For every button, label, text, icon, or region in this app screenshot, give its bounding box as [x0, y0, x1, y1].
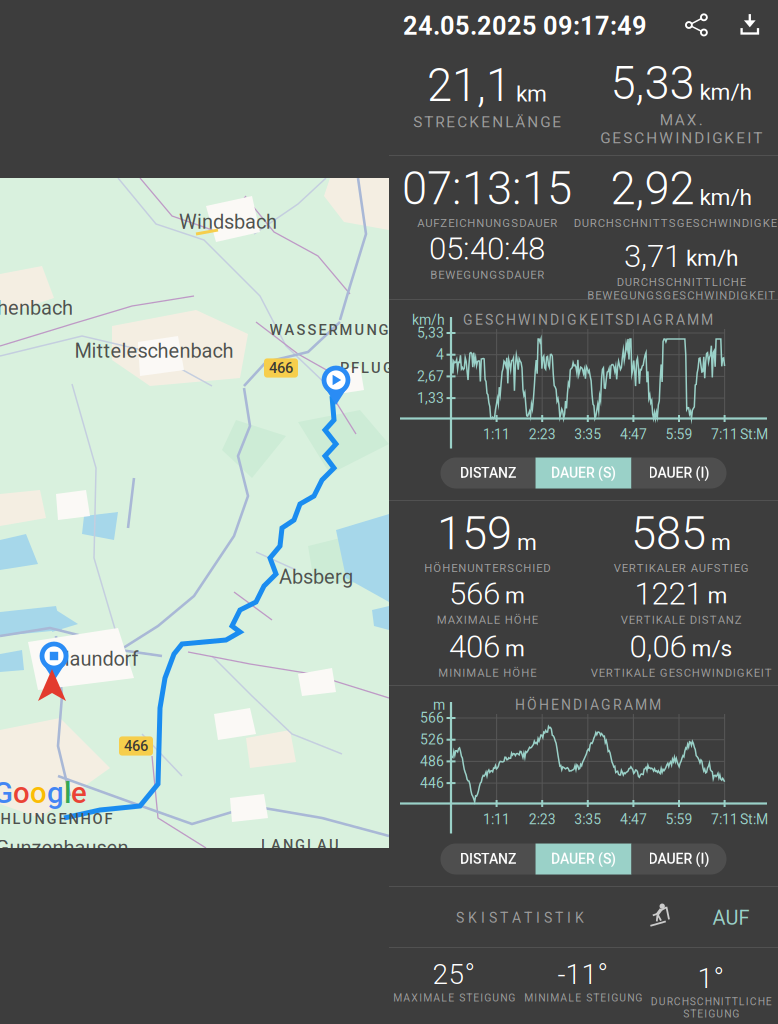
staticText: H Ö H E N U N T E R S C H I E D — [424, 561, 550, 575]
staticText: 1° — [697, 962, 724, 995]
staticText: 406 — [449, 628, 500, 665]
staticText: St:M — [740, 811, 768, 828]
staticText: 446 — [420, 775, 444, 791]
staticText: l — [64, 776, 71, 810]
staticText: 1:11 — [483, 811, 510, 828]
staticText: V E R T I K A L E D I S T A N Z — [620, 613, 741, 626]
button[interactable]: DISTANZ — [440, 457, 535, 488]
staticText: 07:13:15 — [402, 162, 572, 215]
staticText: 1,33 — [417, 390, 444, 406]
staticText: St:M — [740, 426, 768, 443]
staticText: 21,1 — [427, 59, 511, 112]
staticText: DISTANZ — [460, 465, 516, 481]
staticText: 566 — [449, 575, 500, 612]
staticText: G — [0, 776, 13, 810]
staticText: D U R C H S C H N I T T L I C H E S T E … — [650, 996, 771, 1020]
staticText: M A X . G E S C H W I N D I G K E I T — [600, 111, 762, 147]
staticText: 2,92 — [610, 162, 694, 215]
staticText: 2:23 — [529, 811, 556, 828]
staticText: m — [517, 529, 537, 555]
staticText: M A X I M A L E H Ö H E — [436, 613, 537, 626]
staticText: 05:40:48 — [429, 230, 545, 267]
staticText: D U R C H S C H N I T T L I C H E B E W … — [587, 276, 775, 302]
staticText: 4 — [436, 346, 444, 363]
staticText: M I N I M A L E H Ö H E — [438, 666, 536, 679]
staticText: 7:11 — [711, 426, 738, 443]
staticText: g — [47, 776, 64, 810]
staticText: 466 — [124, 737, 148, 755]
staticText: e — [71, 776, 87, 810]
staticText: Haundorf — [55, 647, 138, 671]
staticText: H Ö H E N D I A G R A M M — [515, 697, 661, 713]
staticText: Absberg — [279, 565, 353, 589]
staticText: km/h — [699, 184, 751, 210]
staticText: 7:11 — [711, 811, 738, 828]
staticText: Mitteleschenbach — [74, 339, 233, 363]
staticText: 25° — [432, 958, 475, 991]
button[interactable]: S K I S T A T I S T I K — [389, 887, 778, 947]
button[interactable]: DAUER (S) — [535, 843, 631, 874]
staticText: DAUER (S) — [551, 851, 616, 867]
staticText: 5:59 — [665, 811, 692, 828]
staticText: m — [433, 697, 445, 713]
staticText: 466 — [269, 359, 293, 377]
staticText: 2:23 — [529, 426, 556, 443]
staticText: AUF — [712, 906, 749, 930]
staticText: m — [711, 529, 731, 555]
staticText: P F L U G S — [340, 359, 404, 377]
staticText: -11° — [557, 958, 608, 991]
staticText: S K I S T A T I S T I K — [456, 910, 584, 926]
staticText: o — [13, 776, 30, 810]
staticText: 4:47 — [620, 811, 647, 828]
staticText: D U R C H S C H N I T T S G E S C H W I … — [573, 216, 778, 230]
staticText: 4:47 — [620, 426, 647, 443]
staticText: 566 — [420, 710, 444, 726]
staticText: chenbach — [0, 296, 73, 320]
button[interactable]: DAUER (S) — [535, 457, 631, 488]
staticText: 3:35 — [574, 426, 601, 443]
staticText: km/h — [699, 79, 751, 105]
staticText: km/h — [412, 312, 445, 328]
staticText: DISTANZ — [460, 851, 516, 867]
staticText: DAUER (I) — [648, 465, 709, 481]
staticText: km/h — [686, 245, 738, 271]
staticText: 0,06 — [629, 628, 686, 665]
staticText: A U F Z E I C H N U N G S D A U E R — [417, 216, 557, 230]
staticText: 526 — [420, 731, 444, 748]
staticText: W A S S E R M U N G E N — [269, 321, 410, 339]
staticText: L A N G L A U — [261, 836, 339, 854]
staticText: m/s — [691, 635, 732, 662]
staticText: km — [516, 81, 547, 107]
staticText: B E W E G U N G S D A U E R — [430, 268, 544, 281]
staticText: o — [30, 776, 47, 810]
button[interactable]: Download — [730, 3, 770, 46]
button[interactable]: DAUER (I) — [631, 457, 726, 488]
staticText: 24.05.2025 09:17:49 — [403, 11, 647, 41]
staticText: 5,33 — [610, 57, 694, 110]
staticText: 486 — [420, 753, 444, 770]
staticText: V E R T I K A L E G E S C H W I N D I G … — [590, 666, 771, 679]
staticText: G E S C H W I N D I G K E I T S D I A G … — [463, 312, 713, 328]
staticText: DAUER (I) — [648, 851, 709, 867]
staticText: m — [505, 582, 525, 609]
staticText: 5,33 — [417, 325, 444, 341]
staticText: M A X I M A L E S T E I G U N G — [393, 992, 515, 1004]
button[interactable]: Share — [676, 3, 717, 46]
staticText: m — [505, 635, 525, 662]
staticText: 2,67 — [417, 368, 444, 385]
staticText: V E R T I K A L E R A U F S T I E G — [613, 561, 748, 575]
staticText: 585 — [631, 507, 706, 560]
staticText: 3,71 — [624, 238, 681, 275]
button[interactable]: DISTANZ — [440, 843, 535, 874]
staticText: 5:59 — [665, 426, 692, 443]
staticText: Windsbach — [179, 210, 277, 234]
staticText: 1:11 — [483, 426, 510, 443]
staticText: S C H L U N G E N H O F — [0, 810, 112, 828]
staticText: DAUER (S) — [551, 465, 616, 481]
staticText: M I N I M A L E S T E I G U N G — [524, 992, 642, 1004]
button[interactable]: DAUER (I) — [631, 843, 726, 874]
staticText: 3:35 — [574, 811, 601, 828]
staticText: S T R E C K E N L Ä N G E — [413, 113, 561, 131]
staticText: 159 — [437, 507, 512, 560]
staticText: m — [707, 582, 727, 609]
